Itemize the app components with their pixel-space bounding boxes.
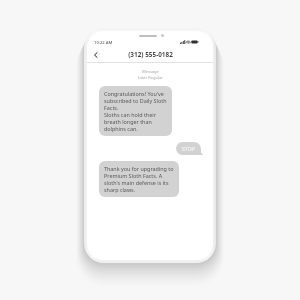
staticText: Premium Sloth Facts. A <box>104 172 163 179</box>
staticText: Facts. <box>104 104 119 111</box>
staticText: dolphins can. <box>104 125 138 132</box>
staticText: Inter Regular <box>138 75 163 80</box>
staticText: Congratulations! You've <box>104 90 164 97</box>
staticText: STOP <box>182 145 195 152</box>
button[interactable]: Congratulations! You've <box>99 86 172 136</box>
staticText: (312) 555-0182 <box>128 50 173 59</box>
staticText: Sloths can hold their <box>104 111 156 118</box>
staticText: 10:22 AM <box>94 40 113 44</box>
staticText: sharp claws. <box>104 186 136 193</box>
staticText: Thank you for upgrading to <box>104 165 174 172</box>
button[interactable]: STOP <box>176 142 201 155</box>
staticText: breath longer than <box>104 118 152 125</box>
button[interactable]: Thank you for upgrading to <box>99 161 179 197</box>
staticText: sloth's main defense is its <box>104 179 169 186</box>
staticText: Message <box>142 69 159 74</box>
staticText: subscribed to Daily Sloth <box>104 97 167 104</box>
button[interactable]: Back <box>90 49 102 61</box>
